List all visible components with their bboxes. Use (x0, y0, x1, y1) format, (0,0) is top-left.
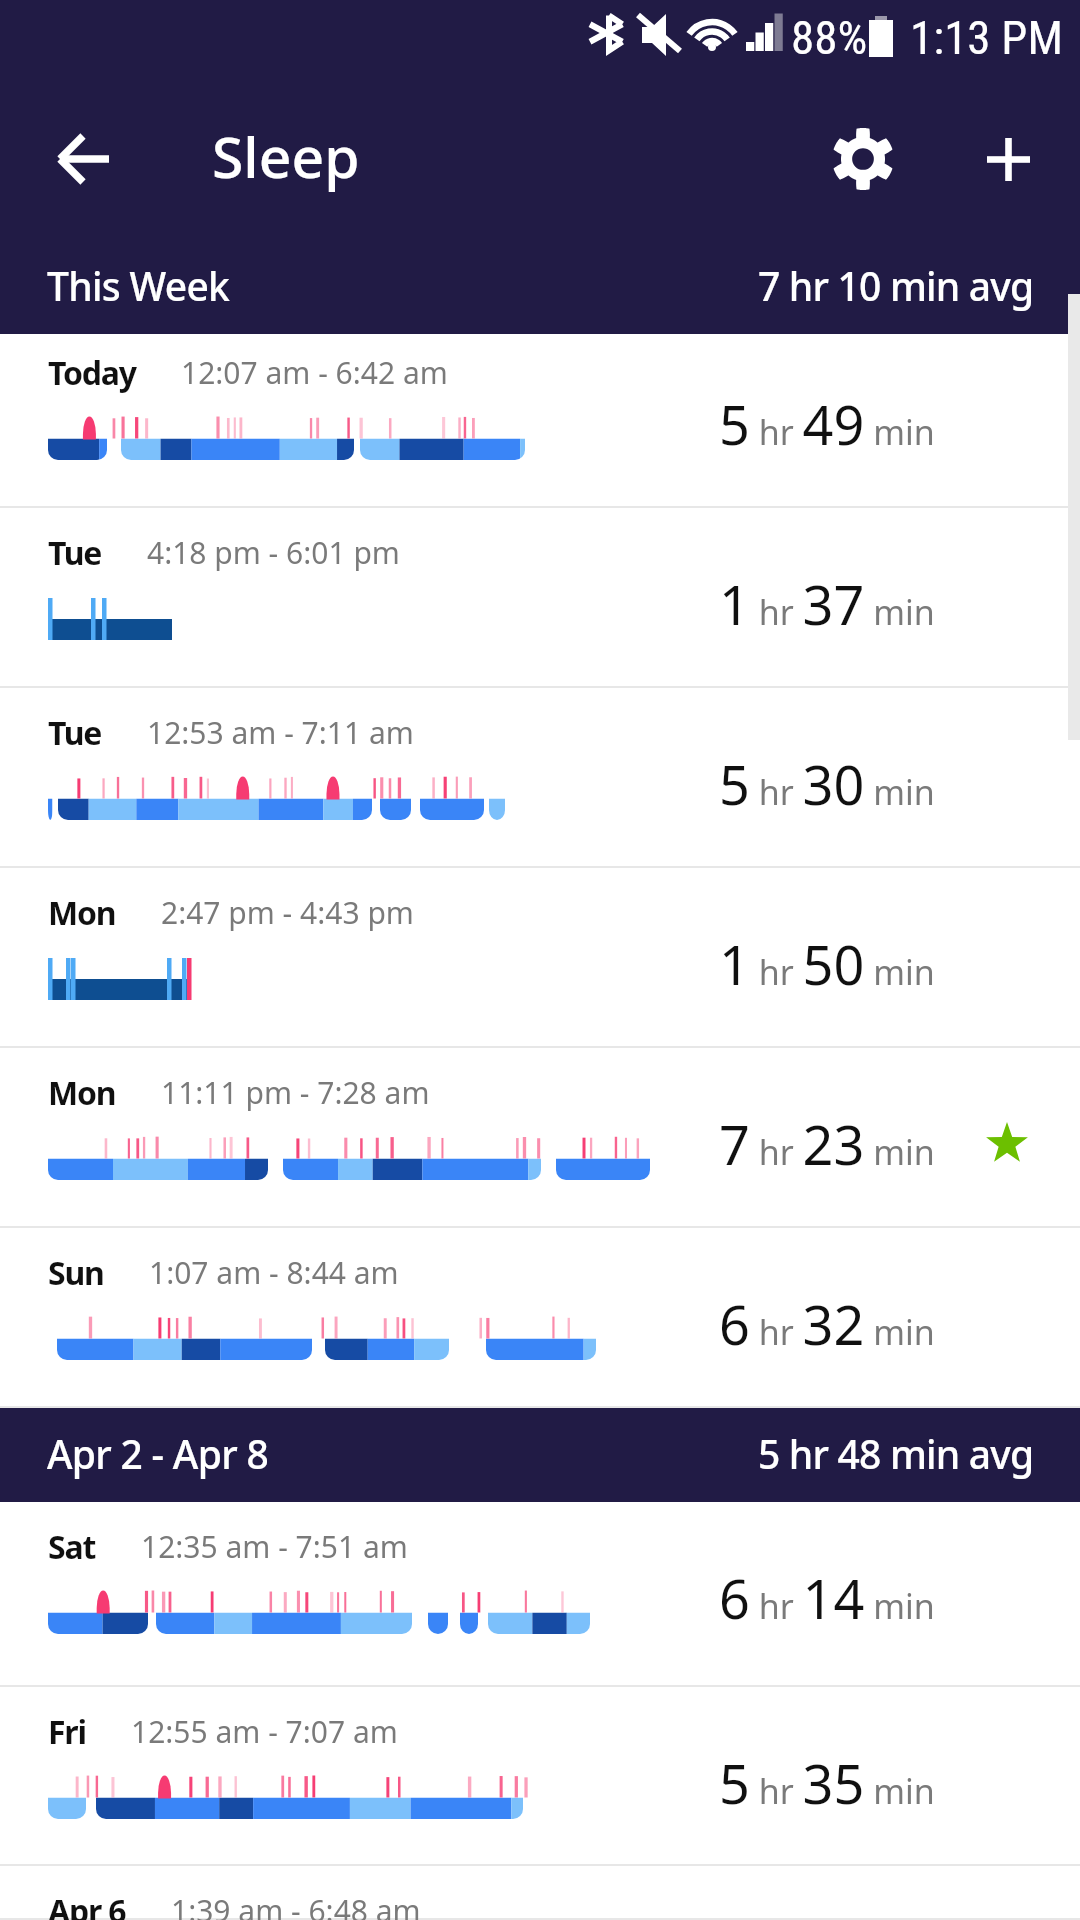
staticText: 1 hr 50 min (719, 927, 935, 1001)
staticText: Apr 2 - Apr 8 (47, 1427, 269, 1480)
button[interactable]: Apr 6 (0, 1866, 1080, 1920)
button[interactable]: This Week (0, 240, 1080, 334)
staticText: 11:11 pm - 7:28 am (161, 1072, 430, 1113)
staticText: 1:39 am - 6:48 am (171, 1890, 421, 1920)
staticText: Today (48, 351, 136, 395)
staticText: Mon (48, 1071, 116, 1115)
button[interactable]: Mon (0, 1048, 1080, 1228)
staticText: 1:13 PM (910, 10, 1063, 65)
staticText: 5 hr 30 min (719, 747, 935, 821)
staticText: 2:47 pm - 4:43 pm (161, 892, 414, 933)
button[interactable]: Today (0, 334, 1080, 508)
staticText: Tue (48, 711, 102, 755)
button[interactable]: Add sleep log (965, 116, 1051, 202)
button[interactable]: Sun (0, 1228, 1080, 1408)
staticText: Fri (48, 1710, 86, 1754)
button[interactable]: Tue (0, 688, 1080, 868)
staticText: 12:07 am - 6:42 am (181, 352, 448, 393)
staticText: 7 hr 10 min avg (758, 259, 1034, 312)
staticText: 1 hr 37 min (719, 567, 935, 641)
staticText: 12:55 am - 7:07 am (131, 1711, 398, 1752)
staticText: 12:35 am - 7:51 am (141, 1526, 408, 1567)
staticText: 4:18 pm - 6:01 pm (147, 532, 400, 573)
staticText: Apr 6 (48, 1889, 126, 1920)
staticText: Sleep (212, 117, 360, 195)
staticText: 6 hr 14 min (719, 1561, 935, 1635)
staticText: Sun (48, 1251, 104, 1295)
staticText: 88% (791, 10, 868, 65)
staticText: Tue (48, 531, 102, 575)
staticText: Sat (48, 1525, 96, 1569)
staticText: 5 hr 48 min avg (758, 1427, 1034, 1480)
staticText: Mon (48, 891, 116, 935)
button[interactable]: Fri (0, 1687, 1080, 1866)
button[interactable]: Mon (0, 868, 1080, 1048)
button[interactable]: Apr 2 - Apr 8 (0, 1408, 1080, 1502)
staticText: 7 hr 23 min (719, 1107, 935, 1181)
staticText: 12:53 am - 7:11 am (147, 712, 414, 753)
button[interactable]: Sat (0, 1502, 1080, 1687)
staticText: 6 hr 32 min (719, 1287, 935, 1361)
staticText: 5 hr 49 min (719, 387, 935, 461)
staticText: 1:07 am - 8:44 am (149, 1252, 399, 1293)
button[interactable]: Tue (0, 508, 1080, 688)
button[interactable]: Back (40, 116, 126, 202)
staticText: This Week (47, 259, 230, 312)
staticText: 5 hr 35 min (719, 1746, 935, 1820)
button[interactable]: Settings (820, 116, 906, 202)
